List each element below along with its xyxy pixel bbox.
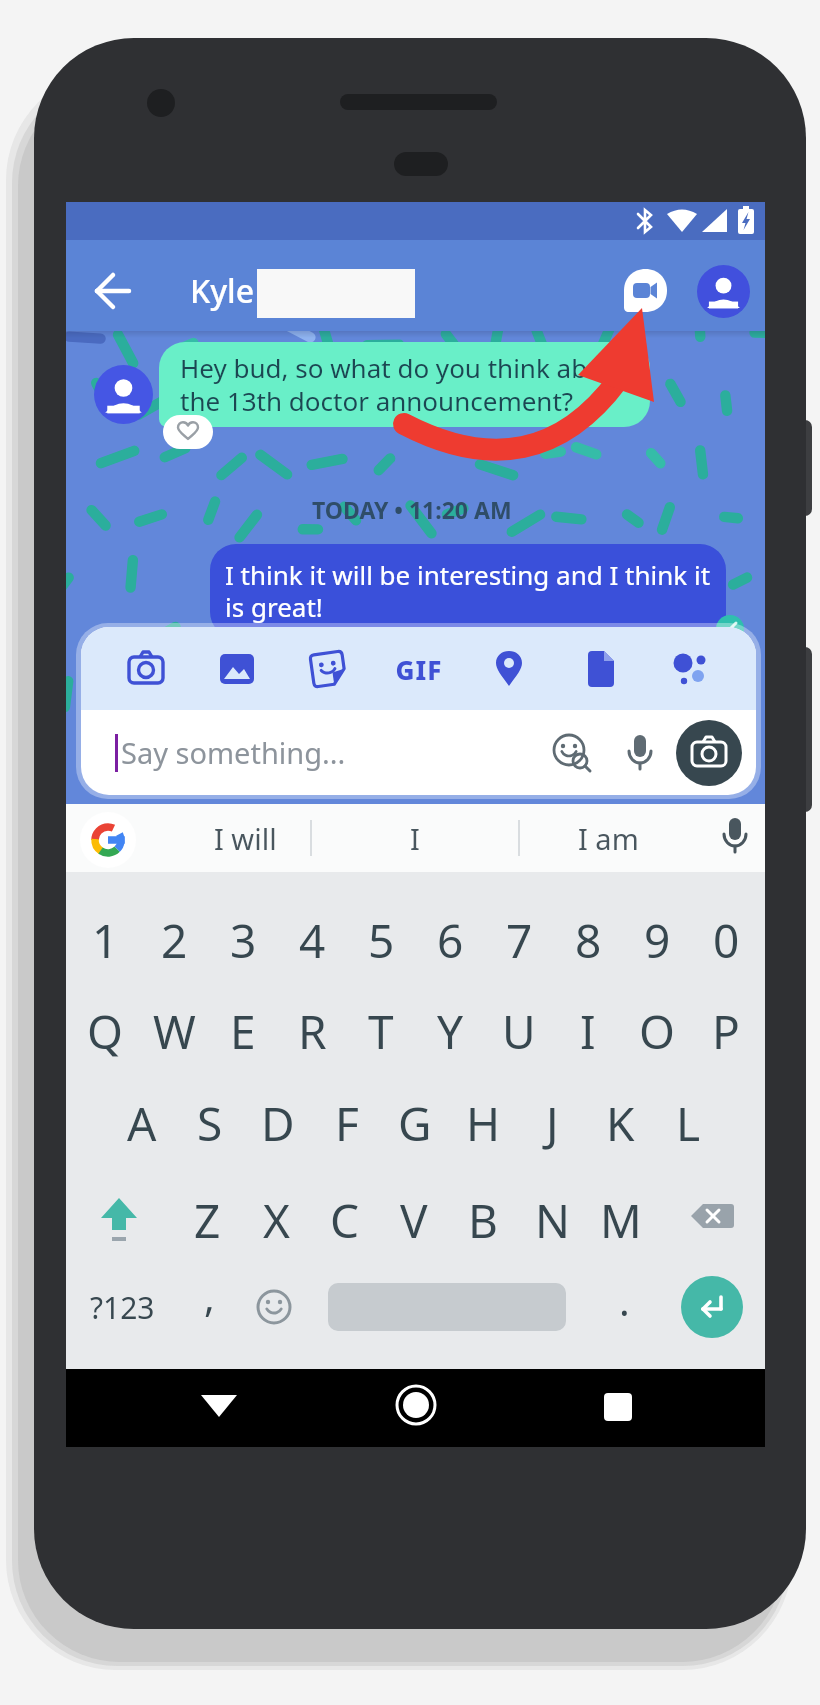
button[interactable] xyxy=(85,1186,153,1254)
button[interactable]: . xyxy=(590,1258,658,1342)
button[interactable] xyxy=(85,263,141,319)
staticText: I xyxy=(580,1000,596,1063)
button[interactable]: 4 xyxy=(278,898,346,982)
button[interactable] xyxy=(677,1186,745,1254)
button[interactable]: 1 xyxy=(71,898,139,982)
button[interactable] xyxy=(614,727,666,779)
button[interactable]: A xyxy=(108,1081,176,1165)
button[interactable]: Z xyxy=(173,1178,241,1262)
button[interactable]: 9 xyxy=(623,898,691,982)
button[interactable]: Y xyxy=(416,989,484,1073)
button[interactable]: 5 xyxy=(347,898,415,982)
button[interactable]: Q xyxy=(71,989,139,1073)
button[interactable]: C xyxy=(311,1178,379,1262)
staticText: U xyxy=(502,1000,536,1063)
button[interactable] xyxy=(184,1372,254,1442)
button[interactable]: 3 xyxy=(209,898,277,982)
button[interactable]: ?123 xyxy=(82,1272,162,1342)
staticText: H xyxy=(466,1092,501,1155)
button[interactable] xyxy=(163,415,213,449)
button[interactable]: 8 xyxy=(554,898,622,982)
staticText: Z xyxy=(194,1189,221,1252)
staticText: 9 xyxy=(644,909,671,972)
staticText: Y xyxy=(437,1000,464,1063)
staticText: I think it will be interesting and I thi… xyxy=(225,557,711,625)
button[interactable] xyxy=(544,725,600,781)
staticText: E xyxy=(230,1000,256,1063)
staticText: C xyxy=(330,1189,360,1252)
button[interactable]: I am xyxy=(519,804,697,872)
staticText: 4 xyxy=(299,909,326,972)
staticText: T xyxy=(368,1000,394,1063)
staticText: I xyxy=(410,819,420,858)
button[interactable] xyxy=(121,644,171,694)
button[interactable]: U xyxy=(485,989,553,1073)
button[interactable] xyxy=(381,1370,451,1440)
button[interactable]: , xyxy=(175,1254,243,1338)
button[interactable]: O xyxy=(623,989,691,1073)
staticText: I will xyxy=(214,819,277,858)
staticText: V xyxy=(400,1189,428,1252)
button[interactable]: 7 xyxy=(485,898,553,982)
button[interactable]: GIF xyxy=(394,644,444,694)
button[interactable]: 2 xyxy=(140,898,208,982)
staticText: O xyxy=(639,1000,675,1063)
button[interactable]: D xyxy=(244,1081,312,1165)
button[interactable] xyxy=(303,644,353,694)
button[interactable]: V xyxy=(380,1178,448,1262)
button[interactable]: P xyxy=(692,989,760,1073)
staticText: 8 xyxy=(575,909,602,972)
staticText: 2 xyxy=(161,909,188,972)
button[interactable]: 6 xyxy=(416,898,484,982)
button[interactable]: W xyxy=(140,989,208,1073)
button[interactable]: F xyxy=(313,1081,381,1165)
button[interactable]: G xyxy=(381,1081,449,1165)
button[interactable]: I xyxy=(311,804,519,872)
staticText: ?123 xyxy=(90,1287,155,1328)
button[interactable]: N xyxy=(518,1178,586,1262)
button[interactable] xyxy=(575,644,625,694)
button[interactable]: 0 xyxy=(692,898,760,982)
button[interactable] xyxy=(484,644,534,694)
button[interactable] xyxy=(212,644,262,694)
button[interactable]: S xyxy=(176,1081,244,1165)
button[interactable]: I xyxy=(554,989,622,1073)
button[interactable] xyxy=(676,720,742,786)
button[interactable] xyxy=(583,1372,653,1442)
button[interactable]: X xyxy=(242,1178,310,1262)
staticText: 5 xyxy=(368,909,395,972)
button[interactable]: H xyxy=(449,1081,517,1165)
button[interactable]: M xyxy=(587,1178,655,1262)
staticText: Kyle xyxy=(190,269,255,313)
button[interactable]: Say something... xyxy=(115,710,742,795)
staticText: J xyxy=(546,1092,559,1155)
staticText: . xyxy=(619,1273,630,1327)
staticText: N xyxy=(535,1189,570,1252)
button[interactable] xyxy=(240,1273,308,1341)
staticText: TODAY • 11:20 AM xyxy=(312,494,512,525)
staticText: 0 xyxy=(713,909,740,972)
staticText: , xyxy=(204,1269,215,1323)
staticText: Hey bud, so what do you think about the … xyxy=(180,350,629,419)
button[interactable]: J xyxy=(518,1081,586,1165)
button[interactable] xyxy=(666,644,716,694)
staticText: P xyxy=(712,1000,740,1063)
staticText: K xyxy=(606,1092,635,1155)
button[interactable]: B xyxy=(449,1178,517,1262)
button[interactable]: K xyxy=(586,1081,654,1165)
button[interactable]: I will xyxy=(180,804,311,872)
button[interactable] xyxy=(707,808,763,864)
button[interactable] xyxy=(697,265,750,318)
button[interactable] xyxy=(80,812,136,868)
button[interactable] xyxy=(623,268,668,313)
button[interactable]: T xyxy=(347,989,415,1073)
staticText: Q xyxy=(87,1000,123,1063)
button[interactable]: E xyxy=(209,989,277,1073)
staticText: L xyxy=(676,1092,701,1155)
button[interactable] xyxy=(681,1276,743,1338)
button[interactable]: L xyxy=(654,1081,722,1165)
staticText: Say something... xyxy=(121,733,346,772)
button[interactable]: R xyxy=(278,989,346,1073)
staticText: 7 xyxy=(506,909,533,972)
